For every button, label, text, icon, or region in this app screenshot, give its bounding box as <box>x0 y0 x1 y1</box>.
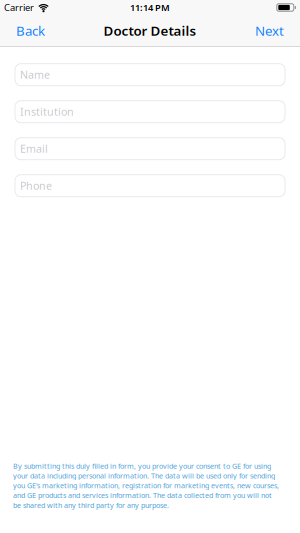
staticText: Name <box>20 68 50 82</box>
staticText: 11:14 PM <box>130 1 170 14</box>
staticText: Phone <box>20 179 52 193</box>
button[interactable]: Phone <box>15 175 285 197</box>
staticText: Email <box>20 142 48 156</box>
staticText: Doctor Details <box>103 22 196 39</box>
staticText: Carrier <box>4 1 34 14</box>
staticText: Back <box>16 22 45 39</box>
staticText: Institution <box>20 105 74 119</box>
staticText: By submitting this duly filled in form, … <box>13 461 279 510</box>
button[interactable]: Institution <box>15 101 285 123</box>
button[interactable]: Name <box>15 64 285 86</box>
button[interactable]: Back <box>0 22 45 39</box>
button[interactable]: Email <box>15 138 285 160</box>
staticText: Next <box>255 22 284 39</box>
button[interactable]: Next <box>255 22 300 39</box>
